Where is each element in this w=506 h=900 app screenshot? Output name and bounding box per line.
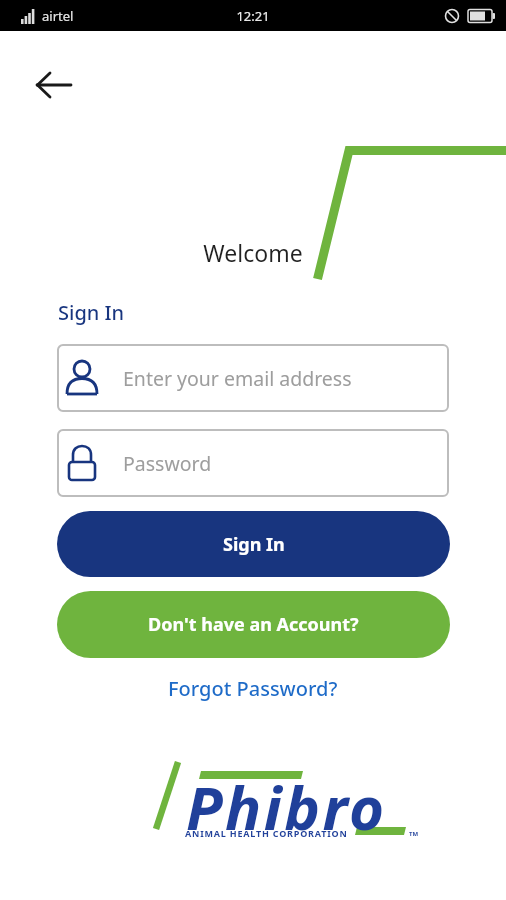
button[interactable] <box>30 62 76 108</box>
staticText: ANIMAL HEALTH CORPORATION <box>185 827 348 839</box>
staticText: Phibro <box>186 766 387 848</box>
button[interactable]: Sign In <box>57 511 450 577</box>
button[interactable]: Password <box>57 429 449 497</box>
staticText: Sign In <box>223 532 285 557</box>
staticText: Don't have an Account? <box>148 612 359 637</box>
button[interactable]: Forgot Password? <box>168 675 338 702</box>
staticText: Enter your email address <box>123 365 352 392</box>
staticText: 12:21 <box>0 7 506 25</box>
staticText: Welcome <box>0 237 506 268</box>
staticText: Sign In <box>58 299 125 326</box>
staticText: TM <box>409 830 419 838</box>
button[interactable]: Enter your email address <box>57 344 449 412</box>
staticText: Password <box>123 450 212 477</box>
staticText: airtel <box>42 7 74 25</box>
button[interactable]: Don't have an Account? <box>57 591 450 658</box>
